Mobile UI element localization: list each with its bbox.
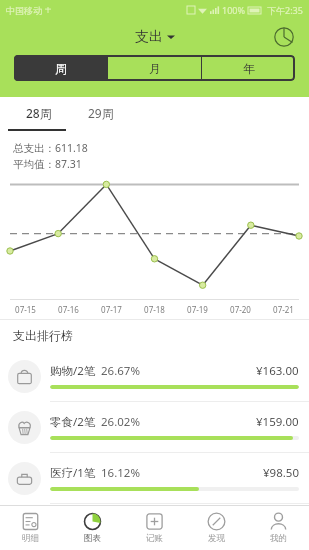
staticText: ¥159.00 [256, 414, 299, 430]
staticText: 100% [222, 4, 245, 16]
staticText: 26.67% [101, 363, 140, 379]
button[interactable]: 医疗/1笔 [0, 453, 309, 504]
staticText: 07-19 [176, 304, 219, 315]
staticText: 26.02% [101, 414, 140, 430]
staticText: 年 [243, 61, 255, 76]
staticText: 07-15 [4, 304, 47, 315]
button[interactable]: 图表 [61, 506, 123, 550]
staticText: 28周 [26, 105, 52, 121]
staticText: ¥163.00 [256, 363, 299, 379]
button[interactable]: 28周 [8, 97, 70, 129]
staticText: 总支出：611.18 [13, 141, 88, 155]
staticText: 购物/2笔 [50, 363, 96, 379]
staticText: 07-17 [90, 304, 133, 315]
staticText: ¥98.50 [263, 465, 299, 481]
staticText: 医疗/1笔 [50, 465, 96, 481]
button[interactable]: 零食/2笔 [0, 402, 309, 453]
button[interactable]: 我的 [247, 506, 309, 550]
button[interactable]: 年 [202, 55, 295, 81]
staticText: 图表 [84, 533, 101, 544]
button[interactable]: 周 [14, 55, 107, 81]
staticText: 07-21 [262, 304, 305, 315]
button[interactable]: 记账 [123, 506, 185, 550]
button[interactable]: Pie chart [269, 22, 299, 52]
button[interactable]: 发现 [185, 506, 247, 550]
staticText: 我的 [270, 533, 287, 544]
staticText: 支出 [135, 28, 163, 46]
staticText: 支出排行榜 [13, 328, 73, 343]
button[interactable]: 29周 [70, 97, 132, 129]
staticText: 07-20 [219, 304, 262, 315]
button[interactable]: 月 [108, 55, 201, 81]
staticText: 07-18 [133, 304, 176, 315]
staticText: 明细 [22, 533, 39, 544]
button[interactable]: 支出 [127, 24, 183, 50]
staticText: 月 [149, 61, 161, 76]
staticText: 07-16 [47, 304, 90, 315]
staticText: 周 [55, 61, 67, 76]
button[interactable]: 购物/2笔 [0, 351, 309, 402]
staticText: 零食/2笔 [50, 414, 96, 430]
button[interactable]: 明细 [0, 506, 61, 550]
staticText: 发现 [208, 533, 225, 544]
staticText: 16.12% [101, 465, 140, 481]
staticText: 平均值：87.31 [13, 157, 82, 171]
staticText: 29周 [88, 105, 114, 121]
staticText: 中国移动 [6, 5, 42, 16]
staticText: 下午2:35 [267, 4, 303, 16]
staticText: 记账 [146, 533, 163, 544]
